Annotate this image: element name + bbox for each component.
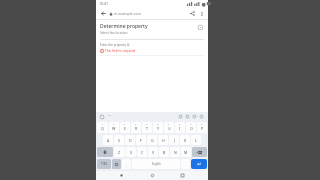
staticText: H — [162, 138, 165, 143]
button[interactable]: M — [181, 147, 191, 157]
button[interactable]: Emoji — [112, 159, 121, 169]
button[interactable]: 0 — [197, 122, 207, 133]
button[interactable]: Backspace — [192, 147, 207, 157]
button[interactable]: Google — [99, 114, 105, 120]
button[interactable]: 7 — [164, 122, 174, 133]
button[interactable]: X — [126, 147, 136, 157]
button[interactable]: F — [136, 135, 146, 145]
staticText: M — [184, 150, 188, 155]
staticText: " " — [108, 115, 112, 119]
button[interactable]: C — [137, 147, 147, 157]
staticText: 0 — [201, 123, 203, 126]
staticText: 2 — [113, 123, 115, 126]
staticText: 6 — [157, 123, 159, 126]
button[interactable]: Shift — [97, 147, 113, 157]
button[interactable]: Mic — [198, 113, 205, 120]
staticText: J — [174, 138, 175, 143]
button[interactable]: m.example.com — [109, 8, 187, 19]
button[interactable]: Help — [196, 23, 204, 31]
button[interactable]: Stickers — [177, 113, 184, 120]
button[interactable]: 9 — [186, 122, 196, 133]
staticText: , — [126, 162, 127, 167]
button[interactable]: 2 — [109, 122, 119, 133]
staticText: X — [130, 150, 133, 155]
button[interactable]: 4 — [131, 122, 141, 133]
staticText: Select the location — [100, 31, 128, 35]
button[interactable]: S — [114, 135, 124, 145]
staticText: This field is required — [105, 49, 136, 53]
button[interactable]: L — [191, 135, 201, 145]
button[interactable]: 8 — [175, 122, 185, 133]
staticText: A — [107, 138, 110, 143]
button[interactable]: Back — [117, 171, 126, 180]
staticText: E — [124, 126, 126, 131]
button[interactable]: J — [169, 135, 179, 145]
staticText: Y — [157, 126, 160, 131]
staticText: Q — [101, 126, 104, 131]
staticText: B — [163, 150, 166, 155]
staticText: F — [140, 138, 142, 143]
staticText: N — [174, 150, 177, 155]
staticText: S — [118, 138, 120, 143]
staticText: O — [190, 126, 193, 131]
button[interactable]: Settings — [191, 113, 198, 120]
staticText: 1 — [102, 123, 104, 126]
button[interactable]: Share — [187, 8, 197, 18]
staticText: V — [152, 150, 155, 155]
button[interactable]: Space — [132, 159, 180, 169]
staticText: English — [152, 162, 161, 166]
button[interactable]: G — [147, 135, 157, 145]
staticText: Z — [118, 150, 121, 155]
button[interactable]: , — [122, 159, 131, 169]
button[interactable]: B — [159, 147, 169, 157]
staticText: T — [146, 126, 148, 131]
button[interactable]: H — [158, 135, 168, 145]
staticText: C — [141, 150, 144, 155]
staticText: U — [168, 126, 171, 131]
button[interactable]: 6 — [153, 122, 163, 133]
staticText: 3 — [124, 123, 126, 126]
button[interactable]: More options — [197, 9, 206, 18]
staticText: . — [185, 162, 186, 167]
staticText: W — [112, 126, 116, 131]
button[interactable]: ?123 — [97, 159, 111, 169]
button[interactable]: A — [103, 135, 113, 145]
button[interactable]: 3 — [120, 122, 130, 133]
button[interactable]: V — [148, 147, 158, 157]
staticText: Enter the property id — [100, 43, 130, 47]
staticText: L — [195, 138, 197, 143]
button[interactable]: Enter — [191, 159, 207, 169]
button[interactable]: Home — [148, 171, 157, 180]
staticText: 8 — [179, 123, 181, 126]
staticText: R — [135, 126, 138, 131]
staticText: G — [151, 138, 154, 143]
staticText: Determine property — [100, 23, 148, 30]
staticText: 9 — [190, 123, 192, 126]
staticText: I — [179, 126, 181, 131]
button[interactable]: GIF — [184, 113, 191, 120]
staticText: ?123 — [101, 162, 107, 166]
button[interactable]: 5 — [142, 122, 152, 133]
button[interactable]: 1 — [97, 122, 108, 133]
staticText: D — [129, 138, 132, 143]
staticText: 5 — [146, 123, 148, 126]
staticText: 4 — [135, 123, 137, 126]
button[interactable]: Enter the property id — [100, 43, 204, 56]
staticText: K — [184, 138, 187, 143]
button[interactable]: D — [125, 135, 135, 145]
staticText: m.example.com — [114, 11, 141, 16]
button[interactable]: N — [170, 147, 180, 157]
button[interactable]: Back — [98, 8, 108, 18]
button[interactable]: K — [180, 135, 190, 145]
staticText: P — [201, 126, 204, 131]
button[interactable]: Recents — [178, 171, 187, 180]
button[interactable]: Z — [114, 147, 125, 157]
staticText: 7 — [168, 123, 170, 126]
button[interactable]: . — [181, 159, 190, 169]
staticText: 10:41 — [99, 1, 108, 6]
